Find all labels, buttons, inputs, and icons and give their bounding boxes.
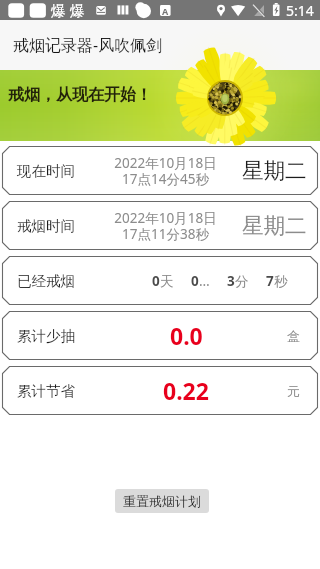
button[interactable]: 戒烟时间: [2, 201, 318, 250]
staticText: 0: [191, 272, 199, 290]
staticText: 秒: [274, 273, 288, 290]
staticText: 0.0: [170, 320, 203, 351]
staticText: 0: [152, 272, 160, 290]
staticText: 星期二: [242, 157, 307, 184]
staticText: 2022年10月18日 17点11分38秒: [114, 209, 217, 243]
button[interactable]: 累计节省: [2, 366, 318, 415]
staticText: 戒烟时间: [17, 217, 75, 235]
button[interactable]: 重置戒烟计划: [115, 489, 209, 513]
staticText: 戒烟，从现在开始！: [8, 85, 152, 105]
staticText: 天: [160, 273, 174, 290]
staticText: 3: [227, 272, 235, 290]
staticText: 盒: [287, 328, 300, 344]
staticText: 已经戒烟: [17, 272, 75, 290]
staticText: 重置戒烟计划: [123, 493, 201, 509]
staticText: 5:14: [286, 1, 314, 20]
button[interactable]: 现在时间: [2, 146, 318, 195]
staticText: 0.22: [163, 375, 209, 406]
staticText: A: [162, 5, 169, 17]
staticText: 星期二: [242, 212, 307, 239]
staticText: 累计少抽: [17, 327, 75, 345]
staticText: 累计节省: [17, 382, 75, 400]
staticText: 戒烟记录器-风吹佩剑: [13, 34, 163, 56]
staticText: 爆 爆: [51, 0, 85, 20]
staticText: …: [199, 272, 210, 290]
staticText: 7: [266, 272, 274, 290]
staticText: 现在时间: [17, 162, 75, 180]
staticText: 2022年10月18日 17点14分45秒: [114, 154, 217, 188]
staticText: 分: [235, 273, 249, 290]
staticText: 元: [287, 383, 300, 399]
button[interactable]: 累计少抽: [2, 311, 318, 360]
button[interactable]: 已经戒烟: [2, 256, 318, 305]
